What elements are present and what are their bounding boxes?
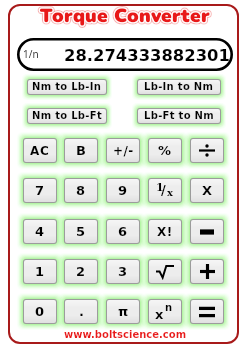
button[interactable]: 1 bbox=[15, 251, 65, 292]
staticText: www.boltscience.com bbox=[64, 329, 187, 341]
staticText: B bbox=[76, 143, 86, 158]
staticText: 6 bbox=[118, 224, 128, 239]
button[interactable]: Decimal point bbox=[56, 291, 106, 332]
button[interactable]: Nm to Lb-Ft bbox=[20, 101, 114, 131]
button[interactable]: 5 bbox=[56, 211, 106, 252]
button[interactable]: Plus minus bbox=[98, 130, 148, 171]
button[interactable]: 8 bbox=[56, 170, 106, 211]
staticText: 1 bbox=[156, 181, 164, 194]
button[interactable]: 9 bbox=[98, 170, 148, 211]
staticText: Nm to Lb-In bbox=[32, 81, 102, 93]
staticText: x bbox=[155, 307, 164, 322]
staticText: π bbox=[118, 304, 129, 319]
button[interactable]: 4 bbox=[15, 211, 65, 252]
button[interactable]: 6 bbox=[98, 211, 148, 252]
staticText: n bbox=[165, 302, 173, 314]
button[interactable]: Nm to Lb-In bbox=[20, 72, 114, 102]
button[interactable]: Lb-Ft to Nm bbox=[130, 101, 228, 131]
staticText: 4 bbox=[35, 224, 45, 239]
button[interactable]: Pi bbox=[98, 291, 148, 332]
button[interactable]: Square root bbox=[140, 251, 190, 292]
button[interactable]: Percent bbox=[140, 130, 190, 171]
button[interactable]: Plus bbox=[182, 251, 232, 292]
staticText: 7 bbox=[35, 183, 45, 198]
staticText: AC bbox=[30, 144, 50, 158]
staticText: 1 bbox=[35, 264, 45, 279]
staticText: Lb-Ft to Nm bbox=[144, 110, 214, 122]
button[interactable]: Factorial bbox=[140, 211, 190, 252]
button[interactable]: Minus bbox=[182, 211, 232, 252]
button[interactable]: Reciprocal bbox=[140, 170, 190, 211]
staticText: x bbox=[167, 187, 173, 199]
staticText: 1/n bbox=[23, 47, 39, 61]
button[interactable]: Backspace bbox=[56, 130, 106, 171]
staticText: 5 bbox=[76, 224, 86, 239]
staticText: 3 bbox=[118, 264, 128, 279]
button[interactable]: 2 bbox=[56, 251, 106, 292]
staticText: . bbox=[79, 304, 84, 319]
staticText: 2 bbox=[76, 264, 86, 279]
staticText: X! bbox=[157, 225, 173, 239]
staticText: +/- bbox=[113, 144, 134, 158]
button[interactable]: Lb-In to Nm bbox=[130, 72, 228, 102]
staticText: 8 bbox=[76, 183, 86, 198]
staticText: / bbox=[161, 183, 166, 198]
button[interactable]: 7 bbox=[15, 170, 65, 211]
staticText: 28.274333882301 bbox=[64, 46, 230, 65]
button[interactable]: 0 bbox=[15, 291, 65, 332]
staticText: 0 bbox=[35, 304, 45, 319]
staticText: X bbox=[202, 183, 213, 198]
staticText: % bbox=[158, 143, 172, 158]
button[interactable]: Equals bbox=[182, 291, 232, 332]
button[interactable]: Power bbox=[140, 291, 190, 332]
button[interactable]: Divide bbox=[182, 130, 232, 171]
staticText: Nm to Lb-Ft bbox=[32, 110, 102, 122]
button[interactable]: All clear bbox=[15, 130, 65, 171]
staticText: Lb-In to Nm bbox=[144, 81, 214, 93]
staticText: 9 bbox=[118, 183, 128, 198]
button[interactable]: Multiply bbox=[182, 170, 232, 211]
button[interactable]: 3 bbox=[98, 251, 148, 292]
